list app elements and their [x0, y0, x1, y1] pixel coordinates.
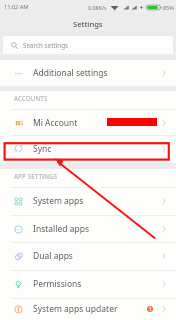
button[interactable]: Sync	[0, 135, 176, 162]
staticText: 11:02 AM	[4, 3, 29, 11]
button[interactable]: Installed apps	[0, 215, 176, 243]
staticText: 1	[149, 306, 152, 312]
staticText: Permissions	[33, 278, 82, 290]
other: Additional settings	[160, 69, 168, 77]
other: System apps	[160, 197, 168, 205]
other: Mi Account	[160, 119, 168, 127]
button[interactable]: Permissions	[0, 270, 176, 298]
other: Installed apps	[160, 225, 168, 233]
staticText: Dual apps	[33, 250, 73, 262]
button[interactable]: Search settings	[3, 36, 173, 54]
staticText: Installed apps	[33, 223, 89, 235]
staticText: Sync	[33, 143, 52, 155]
button[interactable]: Dual apps	[0, 242, 176, 270]
staticText: System apps updater	[33, 303, 118, 315]
button[interactable]: System apps updater	[0, 298, 176, 320]
staticText: Additional settings	[33, 67, 108, 79]
button[interactable]: System apps	[0, 187, 176, 215]
button[interactable]: Mi Account	[0, 109, 176, 136]
other: Sync	[160, 145, 168, 153]
button[interactable]: Additional settings	[0, 60, 176, 86]
staticText: 85%	[163, 4, 174, 11]
staticText: Mi Account	[33, 117, 78, 129]
other: Dual apps	[160, 252, 168, 260]
staticText: ACCOUNTS	[14, 94, 48, 102]
staticText: 0.08K/s	[88, 4, 107, 11]
other: Permissions	[160, 280, 168, 288]
staticText: Settings	[73, 19, 103, 29]
staticText: System apps	[33, 195, 84, 207]
staticText: APP SETTINGS	[14, 172, 58, 180]
other: System apps updater	[160, 305, 168, 313]
staticText: Search settings	[23, 41, 69, 50]
